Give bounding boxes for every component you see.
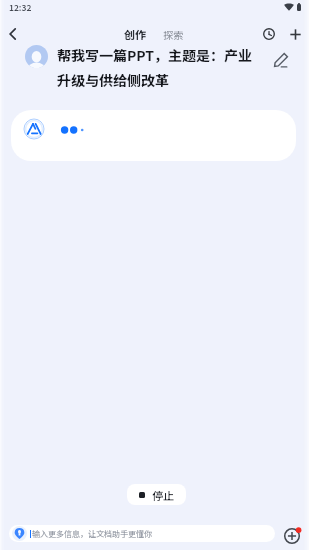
button[interactable]: Back — [0, 20, 27, 48]
staticText: 探索 — [163, 27, 183, 41]
button[interactable]: New chat — [282, 21, 308, 47]
button[interactable]: 输入更多信息，让文档助手更懂你 — [9, 525, 275, 542]
staticText: 帮我写一篇PPT，主题是：产业升级与供给侧改革 — [57, 45, 259, 90]
button[interactable]: History — [256, 21, 282, 47]
button[interactable]: Add attachment — [280, 523, 303, 546]
button[interactable]: 探索 — [158, 24, 188, 44]
button[interactable]: 停止 — [127, 484, 186, 505]
staticText: 停止 — [152, 487, 174, 503]
button[interactable]: Edit — [266, 45, 296, 75]
staticText: 12:32 — [9, 1, 32, 13]
button[interactable]: 创作 — [119, 23, 151, 45]
staticText: 创作 — [124, 26, 146, 42]
staticText: 输入更多信息，让文档助手更懂你 — [32, 528, 152, 540]
button[interactable] — [11, 110, 296, 161]
